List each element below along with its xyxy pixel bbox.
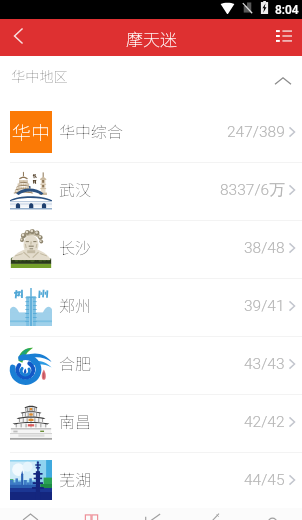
button[interactable]: 长沙 [0,221,302,279]
button[interactable]: 华中地区 [0,56,302,105]
button[interactable]: Messages [122,508,182,520]
button[interactable]: 武汉 [0,163,302,221]
button[interactable]: 南昌 [0,395,302,453]
staticText: 43/43 [244,355,285,373]
staticText: 武汉 [59,177,92,200]
staticText: 8337/6万 [220,180,285,200]
staticText: 芜湖 [59,467,92,490]
button[interactable]: Menu [269,18,299,54]
staticText: 摩天迷 [126,26,177,51]
button[interactable]: Library [61,508,122,520]
staticText: 郑州 [59,293,92,316]
staticText: 39/41 [244,297,285,315]
button[interactable]: 华中 [0,105,302,163]
button[interactable]: Home [0,508,61,520]
button[interactable]: Profile [242,508,302,520]
staticText: 长沙 [59,235,92,258]
button[interactable]: 郑州 [0,279,302,337]
staticText: 华中 [12,118,51,146]
staticText: 8:04 [275,3,299,17]
staticText: 44/45 [244,471,285,489]
button[interactable]: 芜湖 [0,453,302,511]
button[interactable]: Back [0,18,36,54]
staticText: 42/42 [244,413,285,431]
button[interactable]: 合肥 [0,337,302,395]
staticText: 南昌 [59,409,92,432]
staticText: 华中地区 [11,66,68,87]
staticText: 合肥 [59,351,92,374]
staticText: 247/389 [227,123,285,141]
staticText: 38/48 [244,239,285,257]
staticText: 华中综合 [59,119,124,142]
button[interactable]: Discover [182,508,242,520]
